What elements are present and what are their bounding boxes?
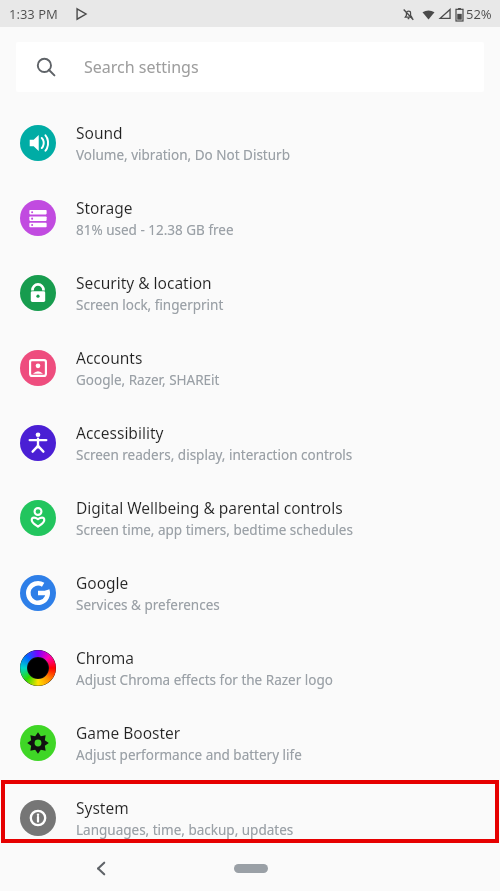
staticText: Adjust performance and battery life	[76, 746, 302, 764]
staticText: Game Booster	[76, 722, 181, 743]
button[interactable]: Storage	[0, 180, 500, 255]
button[interactable]: Home	[223, 855, 279, 881]
button[interactable]: System	[0, 780, 500, 855]
button[interactable]: Accessibility	[0, 405, 500, 480]
staticText: Languages, time, backup, updates	[76, 821, 294, 839]
button[interactable]: Search settings	[16, 42, 484, 92]
button[interactable]: Game Booster	[0, 705, 500, 780]
staticText: Security & location	[76, 272, 212, 293]
staticText: Accounts	[76, 347, 143, 368]
staticText: Accessibility	[76, 422, 164, 443]
staticText: Storage	[76, 197, 133, 218]
button[interactable]: Security & location	[0, 255, 500, 330]
staticText: Services & preferences	[76, 596, 220, 614]
staticText: Google, Razer, SHAREit	[76, 371, 220, 389]
button[interactable]: Sound	[0, 105, 500, 180]
staticText: Search settings	[84, 56, 199, 78]
staticText: Google	[76, 572, 129, 593]
staticText: Screen time, app timers, bedtime schedul…	[76, 521, 353, 539]
staticText: System	[76, 797, 129, 818]
staticText: Screen lock, fingerprint	[76, 296, 224, 314]
staticText: 81% used - 12.38 GB free	[76, 221, 234, 239]
button[interactable]: Digital Wellbeing & parental controls	[0, 480, 500, 555]
staticText: Screen readers, display, interaction con…	[76, 446, 353, 464]
button[interactable]: Back	[82, 849, 120, 887]
staticText: Sound	[76, 122, 123, 143]
staticText: Chroma	[76, 647, 135, 668]
staticText: Digital Wellbeing & parental controls	[76, 497, 343, 518]
button[interactable]: Chroma	[0, 630, 500, 705]
button[interactable]: Accounts	[0, 330, 500, 405]
staticText: 52%	[466, 5, 492, 23]
staticText: Adjust Chroma effects for the Razer logo	[76, 671, 333, 689]
staticText: 1:33 PM	[9, 5, 58, 23]
staticText: Volume, vibration, Do Not Disturb	[76, 146, 290, 164]
button[interactable]: Google	[0, 555, 500, 630]
